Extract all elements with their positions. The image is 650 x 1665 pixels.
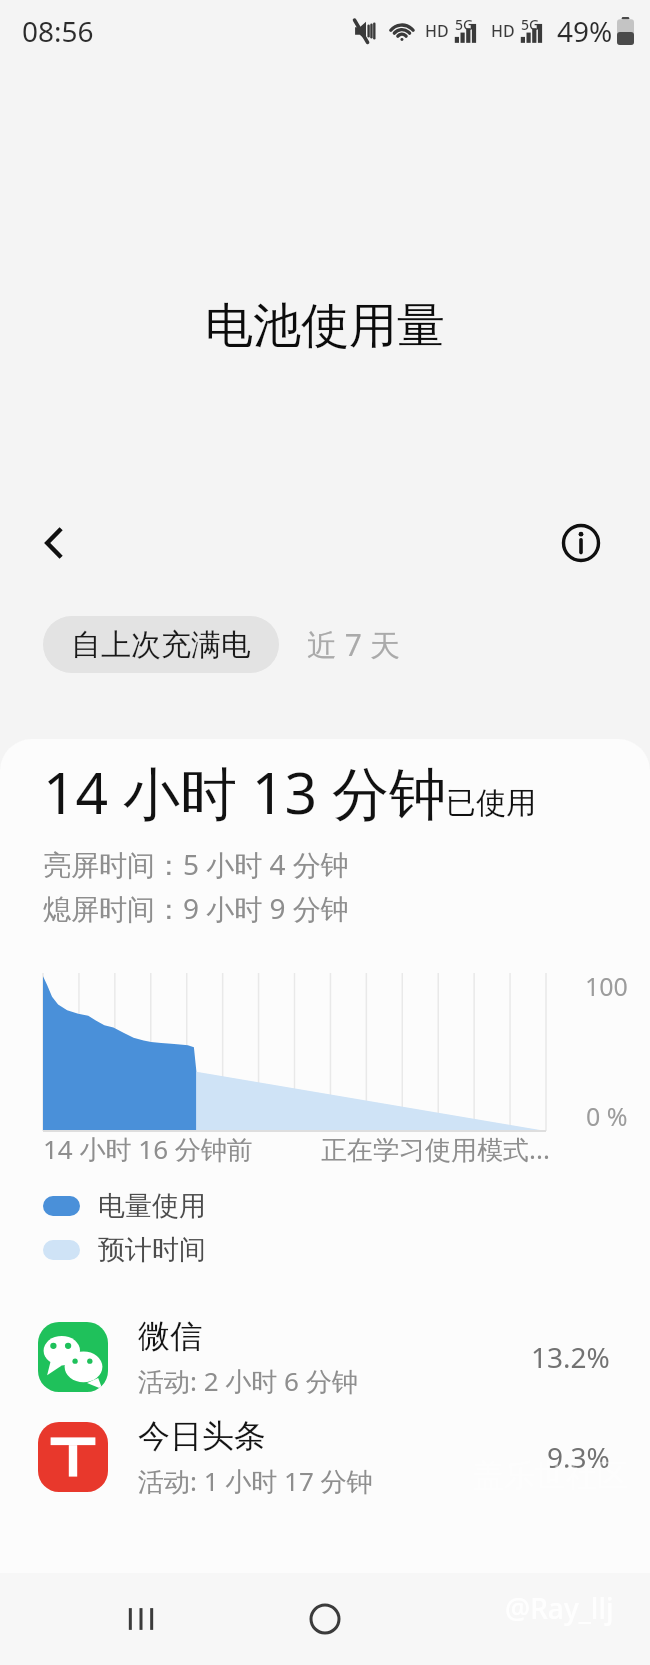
staticText: 100 bbox=[585, 969, 628, 1003]
button[interactable]: 自上次充满电 bbox=[43, 616, 279, 673]
button[interactable]: Back bbox=[24, 512, 86, 574]
staticText: 5G bbox=[521, 15, 540, 34]
staticText: 今日头条 bbox=[138, 1416, 266, 1456]
button[interactable]: Home bbox=[282, 1576, 368, 1662]
staticText: 电量使用 bbox=[98, 1189, 206, 1223]
staticText: 49% bbox=[557, 12, 613, 50]
button[interactable]: 近 7 天 bbox=[279, 616, 428, 673]
staticText: 正在学习使用模式... bbox=[321, 1131, 550, 1167]
button[interactable]: 今日头条 bbox=[0, 1407, 650, 1507]
staticText: 14 小时 16 分钟前 bbox=[43, 1131, 253, 1167]
staticText: 熄屏时间：9 小时 9 分钟 bbox=[43, 889, 349, 927]
button[interactable]: Information bbox=[550, 512, 612, 574]
staticText: 活动: 2 小时 6 分钟 bbox=[138, 1363, 358, 1399]
staticText: 0 % bbox=[586, 1099, 628, 1133]
staticText: 自上次充满电 bbox=[71, 626, 251, 664]
staticText: 14 小时 13 分钟 bbox=[43, 753, 446, 831]
staticText: 盖乐世社区 bbox=[473, 1456, 628, 1495]
staticText: 活动: 1 小时 17 分钟 bbox=[138, 1463, 373, 1499]
staticText: 5G bbox=[455, 15, 474, 34]
staticText: 近 7 天 bbox=[307, 624, 400, 665]
button[interactable]: 微信 bbox=[0, 1307, 650, 1407]
staticText: 预计时间 bbox=[98, 1233, 206, 1267]
staticText: 微信 bbox=[138, 1316, 202, 1356]
staticText: 电池使用量 bbox=[205, 296, 445, 356]
staticText: 13.2% bbox=[531, 1338, 610, 1376]
staticText: HD bbox=[491, 20, 515, 42]
staticText: HD bbox=[425, 20, 449, 42]
staticText: 已使用 bbox=[446, 784, 536, 822]
button[interactable]: Recent apps bbox=[98, 1576, 184, 1662]
staticText: 08:56 bbox=[22, 12, 94, 50]
staticText: 9.3% bbox=[547, 1438, 610, 1476]
staticText: 亮屏时间：5 小时 4 分钟 bbox=[43, 845, 349, 883]
